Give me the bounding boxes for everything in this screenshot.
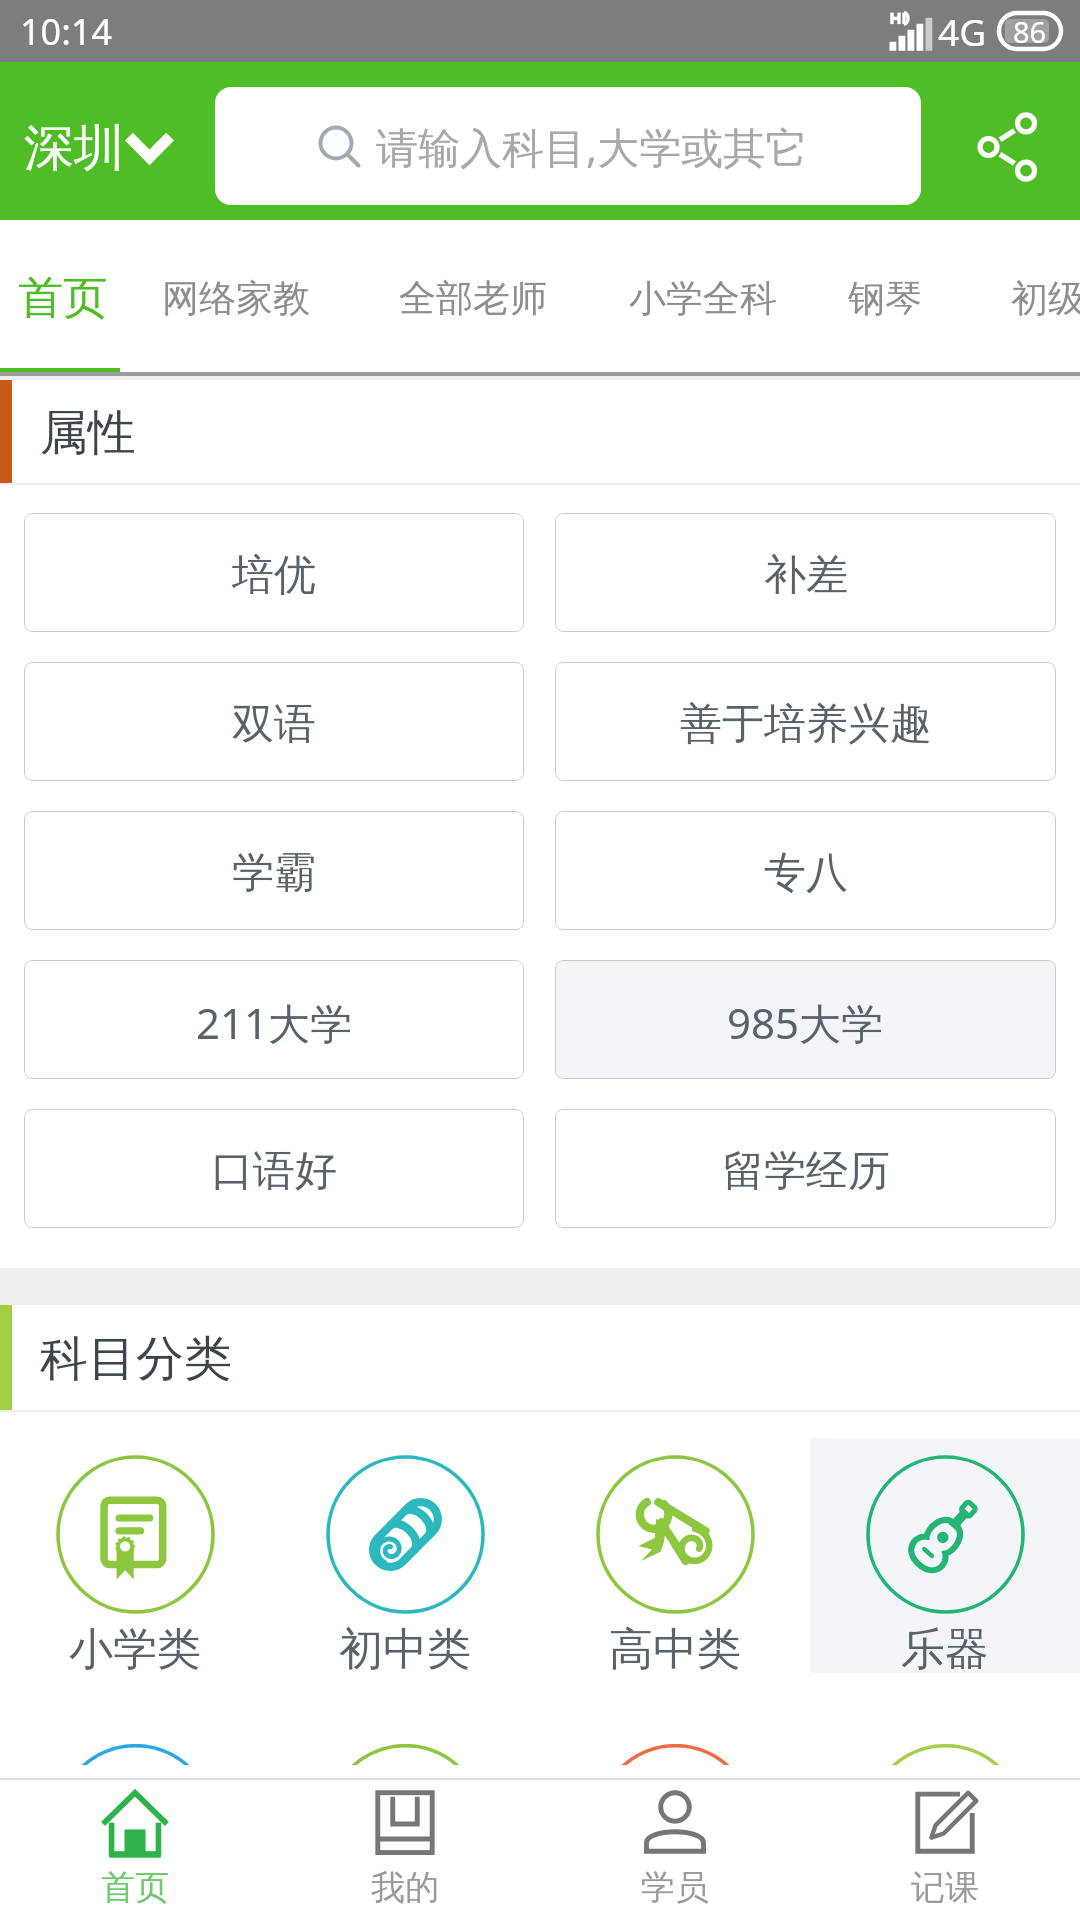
staticText: 深圳 [24, 117, 124, 180]
button[interactable]: 培优 [24, 513, 524, 632]
staticText: 首页 [18, 270, 108, 327]
staticText: 首页 [101, 1866, 169, 1909]
staticText: 乐器 [901, 1622, 989, 1673]
staticText: 善于培养兴趣 [680, 698, 932, 751]
staticText: 4G [938, 6, 987, 56]
button[interactable]: 补差 [555, 513, 1056, 632]
button[interactable]: 我的 [270, 1778, 540, 1920]
button[interactable]: 专八 [555, 811, 1056, 930]
button[interactable]: Share [942, 82, 1072, 212]
button[interactable]: 善于培养兴趣 [555, 662, 1056, 781]
staticText: 学霸 [232, 847, 316, 900]
staticText: 小学类 [69, 1622, 201, 1673]
staticText: 我的 [371, 1866, 439, 1909]
staticText: 高中类 [609, 1622, 741, 1673]
staticText: 211大学 [196, 994, 353, 1051]
button[interactable]: 小学类 [0, 1438, 270, 1673]
button[interactable]: 985大学 [555, 960, 1056, 1079]
button[interactable]: 首页 [0, 1778, 270, 1920]
staticText: 专八 [764, 847, 848, 900]
staticText: 科目分类 [40, 1329, 232, 1389]
staticText: 86 [1013, 12, 1047, 51]
button[interactable]: 记课 [810, 1778, 1080, 1920]
staticText: 双语 [232, 698, 316, 751]
staticText: 985大学 [727, 994, 884, 1051]
staticText: 网络家教 [162, 275, 310, 322]
staticText: 初级英语 [1011, 275, 1080, 322]
button[interactable]: 留学经历 [555, 1109, 1056, 1228]
staticText: 初中类 [339, 1622, 471, 1673]
button[interactable]: 深圳 [24, 117, 171, 180]
button[interactable]: 高中类 [540, 1438, 810, 1673]
staticText: 补差 [764, 549, 848, 602]
button[interactable]: 全部老师 [399, 220, 547, 376]
button[interactable]: 学霸 [24, 811, 524, 930]
button[interactable]: 网络家教 [162, 220, 310, 376]
button[interactable]: 初中类 [270, 1438, 540, 1673]
button[interactable]: 钢琴 [848, 220, 922, 376]
staticText: 小学全科 [629, 275, 777, 322]
button[interactable]: 请输入科目,大学或其它 [215, 87, 921, 205]
staticText: 口语好 [211, 1145, 337, 1198]
button[interactable]: 小学全科 [629, 220, 777, 376]
staticText: 请输入科目,大学或其它 [376, 118, 808, 175]
button[interactable]: 乐器 [810, 1438, 1080, 1673]
staticText: 全部老师 [399, 275, 547, 322]
button[interactable]: 双语 [24, 662, 524, 781]
staticText: 记课 [911, 1866, 979, 1909]
staticText: 学员 [641, 1866, 709, 1909]
button[interactable]: 口语好 [24, 1109, 524, 1228]
staticText: 留学经历 [722, 1145, 890, 1198]
button[interactable]: 211大学 [24, 960, 524, 1079]
staticText: 10:14 [20, 7, 113, 56]
staticText: 培优 [232, 549, 316, 602]
button[interactable]: 初级英语 [1011, 220, 1080, 376]
staticText: 钢琴 [848, 275, 922, 322]
button[interactable]: 首页 [18, 220, 108, 376]
staticText: 属性 [40, 403, 136, 463]
button[interactable]: 学员 [540, 1778, 810, 1920]
